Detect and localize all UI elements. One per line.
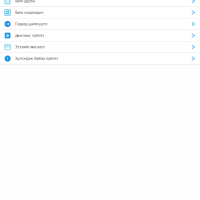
staticText: Хүлээгдэж байгаа гүйлгээ bbox=[15, 56, 58, 61]
button[interactable]: Данснаас гүйлгээ bbox=[0, 30, 200, 41]
staticText: Данснаас гүйлгээ bbox=[15, 33, 44, 38]
staticText: Зээлийн жагсаалт bbox=[15, 45, 45, 49]
staticText: Банк дүрэм bbox=[15, 0, 35, 3]
button[interactable]: Банк хоорондын bbox=[0, 7, 200, 18]
button[interactable]: Гадаад шилжүүлэг bbox=[0, 18, 200, 30]
button[interactable]: Банк дүрэм bbox=[0, 0, 200, 7]
staticText: Гадаад шилжүүлэг bbox=[15, 22, 47, 26]
button[interactable]: Хүлээгдэж байгаа гүйлгээ bbox=[0, 53, 200, 65]
button[interactable]: Зээлийн жагсаалт bbox=[0, 41, 200, 53]
staticText: Банк хоорондын bbox=[15, 10, 43, 15]
